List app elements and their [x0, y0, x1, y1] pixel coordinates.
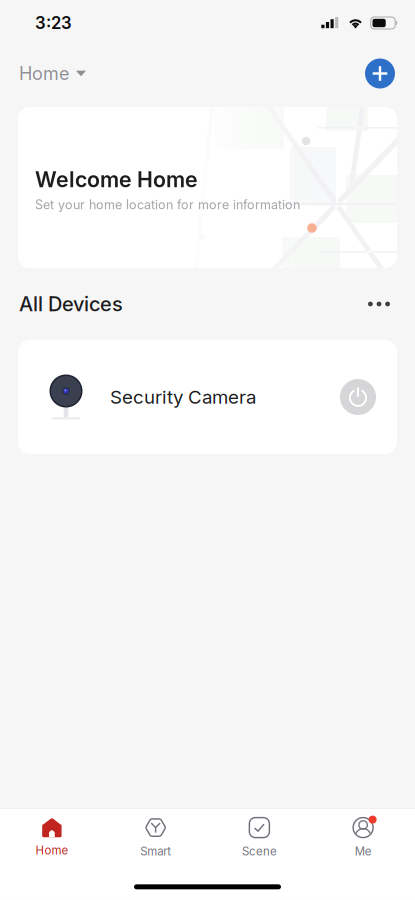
staticText: Scene: [242, 845, 277, 858]
button[interactable]: More options: [358, 292, 400, 316]
staticText: 3:23: [35, 13, 72, 33]
staticText: Set your home location for more informat…: [35, 197, 300, 212]
button[interactable]: Scene: [207, 808, 311, 865]
button[interactable]: Add device: [360, 53, 400, 93]
button[interactable]: Me: [311, 808, 415, 865]
staticText: Welcome Home: [35, 167, 198, 192]
staticText: Home: [19, 63, 69, 84]
button[interactable]: Security Camera: [18, 340, 397, 454]
staticText: Me: [355, 845, 372, 858]
button[interactable]: Home: [17, 54, 88, 93]
button[interactable]: Home: [0, 809, 104, 864]
staticText: Security Camera: [110, 386, 256, 408]
staticText: Home: [35, 844, 68, 857]
button[interactable]: Smart: [104, 808, 208, 865]
staticText: Smart: [140, 845, 171, 858]
staticText: All Devices: [19, 292, 123, 316]
